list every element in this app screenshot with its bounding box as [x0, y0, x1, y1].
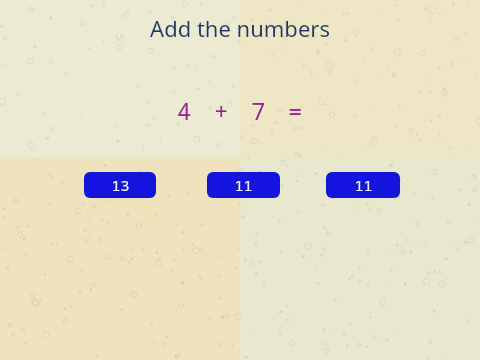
staticText: 11: [354, 175, 373, 195]
staticText: Add the numbers: [150, 13, 330, 43]
button[interactable]: 11: [326, 172, 400, 198]
staticText: =: [288, 94, 303, 127]
staticText: 11: [234, 175, 253, 195]
button[interactable]: 13: [84, 172, 156, 198]
staticText: +: [214, 94, 229, 127]
button[interactable]: 11: [207, 172, 280, 198]
staticText: 7: [251, 94, 266, 127]
staticText: 13: [111, 175, 130, 195]
staticText: 4: [177, 94, 192, 127]
